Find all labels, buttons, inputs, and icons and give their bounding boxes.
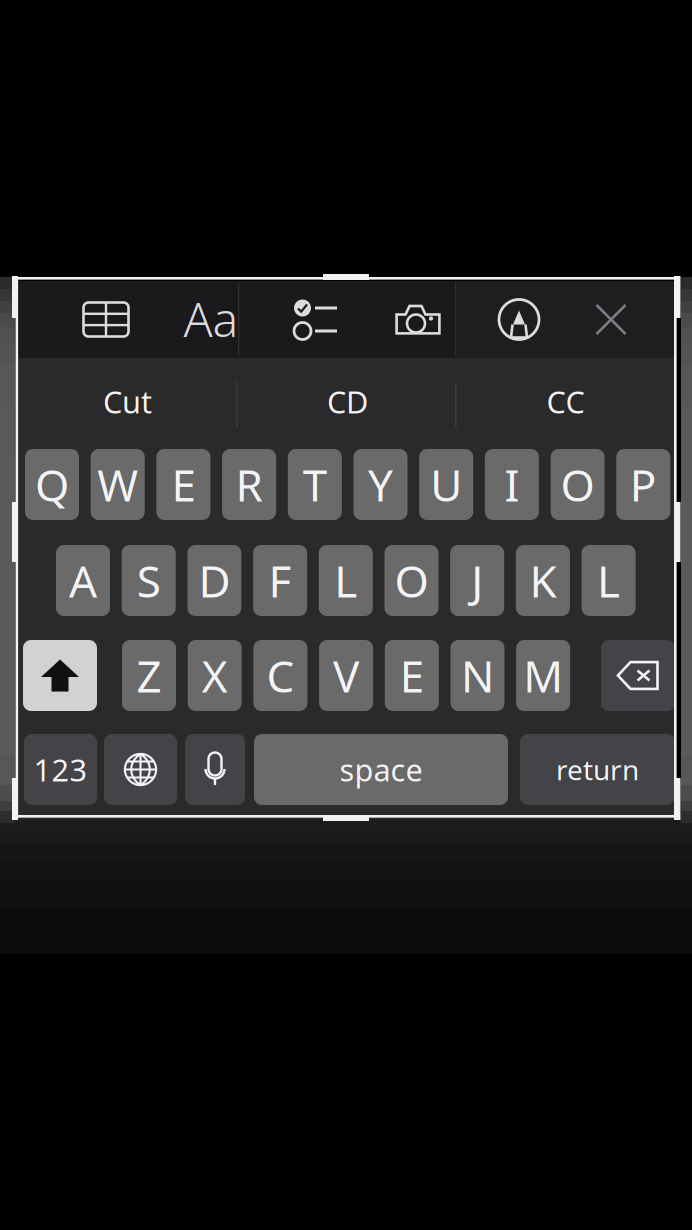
staticText: K [529,551,556,610]
button[interactable]: Next keyboard [104,734,177,805]
staticText: Q [35,455,69,514]
button[interactable]: J [450,545,504,616]
button[interactable]: W [91,449,145,520]
button[interactable]: Close [563,281,659,358]
staticText: P [630,455,657,514]
button[interactable]: E [385,640,439,711]
button[interactable]: Checklist [257,281,353,358]
button[interactable]: space [254,734,508,805]
staticText: O [394,551,428,610]
button[interactable]: K [516,545,570,616]
staticText: S [137,551,161,610]
staticText: E [400,646,424,705]
staticText: F [269,551,292,610]
button[interactable]: O [551,449,605,520]
staticText: Aa [183,287,238,350]
staticText: N [461,646,494,705]
button[interactable]: Q [25,449,79,520]
staticText: X [202,646,228,705]
staticText: D [198,551,230,610]
button[interactable]: R [222,449,276,520]
button[interactable]: P [616,449,670,520]
staticText: C [266,646,294,705]
button[interactable]: F [253,545,307,616]
staticText: Y [368,455,393,514]
button[interactable]: D [187,545,241,616]
staticText: V [333,646,359,705]
button[interactable]: M [516,640,570,711]
button[interactable]: return [520,734,675,805]
button[interactable]: Markup [471,281,567,358]
button[interactable]: 123 [24,734,97,805]
button[interactable]: L [319,545,373,616]
staticText: O [561,455,595,514]
staticText: Cut [103,381,152,422]
button[interactable]: Dictation [185,734,245,805]
button[interactable]: C [253,640,307,711]
staticText: T [303,455,327,514]
staticText: W [97,455,138,514]
button[interactable]: Y [353,449,407,520]
button[interactable]: I [485,449,539,520]
button[interactable]: Delete [601,640,675,711]
button[interactable]: S [122,545,176,616]
button[interactable]: L [582,545,636,616]
staticText: M [523,646,563,705]
staticText: return [556,751,639,788]
staticText: 123 [33,749,87,790]
button[interactable]: O [384,545,438,616]
button[interactable]: Camera [370,281,466,358]
button[interactable]: A [56,545,110,616]
button[interactable]: V [319,640,373,711]
staticText: L [334,551,357,610]
staticText: E [171,455,195,514]
button[interactable]: N [450,640,504,711]
staticText: CC [546,381,584,422]
staticText: R [236,455,263,514]
staticText: space [339,749,422,790]
button[interactable]: E [156,449,210,520]
button[interactable]: Text format [163,280,259,357]
button[interactable]: CD [238,356,457,447]
staticText: CD [327,381,368,422]
staticText: I [504,455,519,514]
button[interactable]: Cut [18,356,237,447]
button[interactable]: CC [456,356,675,447]
staticText: Z [136,646,161,705]
button[interactable]: Z [122,640,176,711]
button[interactable]: T [288,449,342,520]
button[interactable]: U [419,449,473,520]
staticText: L [597,551,620,610]
staticText: A [69,551,97,610]
button[interactable]: Table [58,281,154,358]
button[interactable]: Shift [23,640,97,711]
staticText: U [430,455,462,514]
button[interactable]: X [188,640,242,711]
staticText: J [471,551,483,610]
